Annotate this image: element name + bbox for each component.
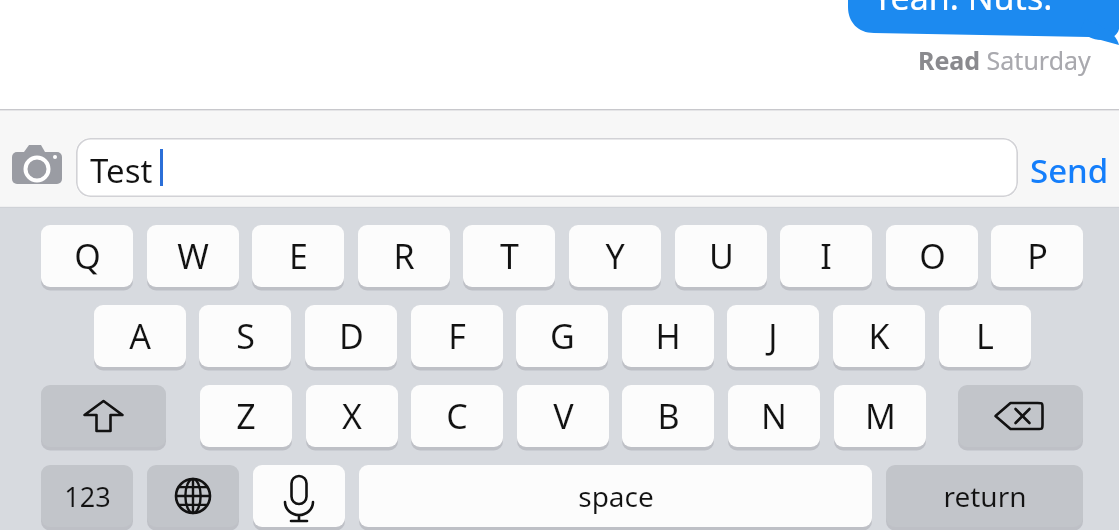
button[interactable]: Y [569, 225, 661, 287]
staticText: C [446, 393, 468, 439]
staticText: Q [74, 233, 101, 279]
button[interactable]: Dictate [253, 465, 345, 527]
button[interactable]: Send [1030, 142, 1119, 194]
staticText: K [868, 313, 890, 359]
staticText: N [761, 393, 787, 439]
staticText: W [177, 233, 209, 279]
staticText: T [500, 233, 519, 279]
staticText: Z [236, 393, 256, 439]
button[interactable]: Switch keyboard [147, 465, 239, 527]
staticText: L [976, 313, 994, 359]
button[interactable]: X [306, 385, 398, 447]
button[interactable]: N [728, 385, 820, 447]
button[interactable]: A [94, 305, 186, 367]
button[interactable]: D [305, 305, 397, 367]
staticText: A [129, 313, 151, 359]
staticText: J [768, 313, 778, 359]
button[interactable]: Take photo or video [8, 138, 66, 196]
staticText: Read Saturday [918, 43, 1091, 77]
button[interactable]: V [517, 385, 609, 447]
button[interactable]: G [516, 305, 608, 367]
button[interactable]: M [834, 385, 926, 447]
button[interactable]: C [411, 385, 503, 447]
staticText: Yeah. Nuts. [873, 0, 1053, 20]
staticText: S [236, 313, 255, 359]
staticText: Test [90, 148, 153, 193]
button[interactable]: T [463, 225, 555, 287]
button[interactable]: J [727, 305, 819, 367]
staticText: Send [1030, 148, 1109, 193]
staticText: I [820, 233, 832, 279]
staticText: O [919, 233, 946, 279]
button[interactable]: U [675, 225, 767, 287]
button[interactable]: I [780, 225, 872, 287]
button[interactable]: Shift [41, 385, 166, 447]
button[interactable]: 123 [41, 465, 133, 527]
staticText: space [578, 477, 654, 515]
staticText: G [550, 313, 575, 359]
staticText: U [709, 233, 734, 279]
staticText: Y [605, 233, 625, 279]
button[interactable]: L [939, 305, 1031, 367]
button[interactable]: Test [76, 138, 1018, 197]
button[interactable]: F [411, 305, 503, 367]
button[interactable]: S [199, 305, 291, 367]
button[interactable]: R [358, 225, 450, 287]
staticText: D [339, 313, 364, 359]
staticText: B [657, 393, 680, 439]
button[interactable]: B [622, 385, 714, 447]
staticText: return [943, 477, 1027, 515]
button[interactable]: E [252, 225, 344, 287]
button[interactable]: Q [41, 225, 133, 287]
staticText: F [448, 313, 466, 359]
staticText: X [342, 393, 362, 439]
button[interactable]: O [886, 225, 978, 287]
button[interactable]: W [147, 225, 239, 287]
staticText: V [553, 393, 574, 439]
staticText: H [655, 313, 681, 359]
staticText: M [865, 393, 896, 439]
staticText: 123 [64, 478, 111, 515]
button[interactable]: Z [200, 385, 292, 447]
button[interactable]: space [359, 465, 872, 527]
button[interactable]: Backspace [958, 385, 1083, 447]
button[interactable]: H [622, 305, 714, 367]
staticText: P [1027, 233, 1048, 279]
button[interactable]: P [991, 225, 1083, 287]
staticText: R [393, 233, 415, 279]
button[interactable]: K [833, 305, 925, 367]
staticText: E [289, 233, 308, 279]
button[interactable]: return [886, 465, 1083, 527]
